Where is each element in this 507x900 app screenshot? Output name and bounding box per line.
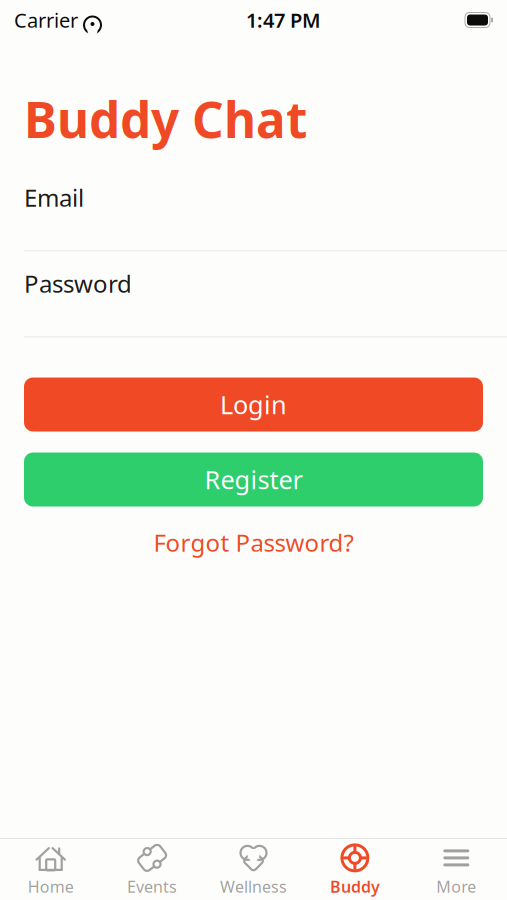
staticText: Login [220,388,287,421]
button[interactable]: Home [0,836,101,900]
staticText: Register [204,463,302,496]
staticText: Password [24,267,132,299]
button[interactable]: Events [101,836,203,900]
staticText: Buddy Chat [24,86,307,151]
staticText: Home [28,876,74,897]
button[interactable]: Forgot Password? [0,518,507,566]
button[interactable]: More [406,836,507,900]
button[interactable]: Buddy [304,836,406,900]
staticText: Carrier [14,7,78,33]
staticText: More [436,876,476,897]
staticText: Buddy [330,876,380,897]
staticText: Forgot Password? [153,526,353,558]
button[interactable]: Wellness [203,836,304,900]
staticText: 1:47 PM [246,7,321,33]
button[interactable]: Register [24,452,483,506]
staticText: Wellness [220,876,287,897]
button[interactable]: Login [24,377,483,431]
staticText: Email [24,181,84,213]
staticText: Events [127,876,177,897]
